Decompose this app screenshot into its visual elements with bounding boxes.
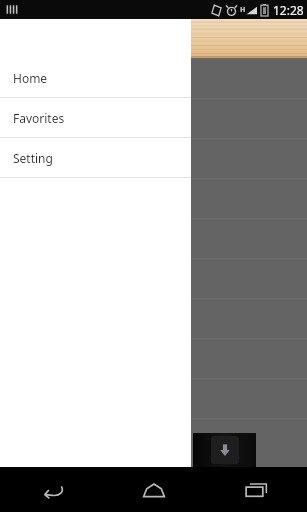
button[interactable]: Back [0,467,103,512]
staticText: H [240,5,246,15]
button[interactable]: Recent apps [205,467,307,512]
staticText: Setting [13,150,53,166]
button[interactable]: Setting [0,138,191,177]
staticText: Favorites [13,110,65,126]
button[interactable]: Favorites [0,98,191,137]
button[interactable]: Home [0,58,191,97]
staticText: Home [13,70,48,86]
button[interactable]: Home [103,467,205,512]
staticText: 12:28 [273,2,304,18]
button[interactable]: Download [211,436,239,464]
